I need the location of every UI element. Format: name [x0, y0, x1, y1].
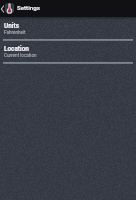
- staticText: Location: [4, 45, 29, 53]
- staticText: Fahrenheit: [4, 30, 26, 35]
- button[interactable]: Units: [0, 17, 136, 40]
- staticText: Settings: [17, 4, 40, 11]
- button[interactable]: Location: [0, 40, 136, 63]
- staticText: Units: [4, 22, 19, 30]
- button[interactable]: Back: [0, 0, 5, 17]
- staticText: Current location: [4, 53, 37, 58]
